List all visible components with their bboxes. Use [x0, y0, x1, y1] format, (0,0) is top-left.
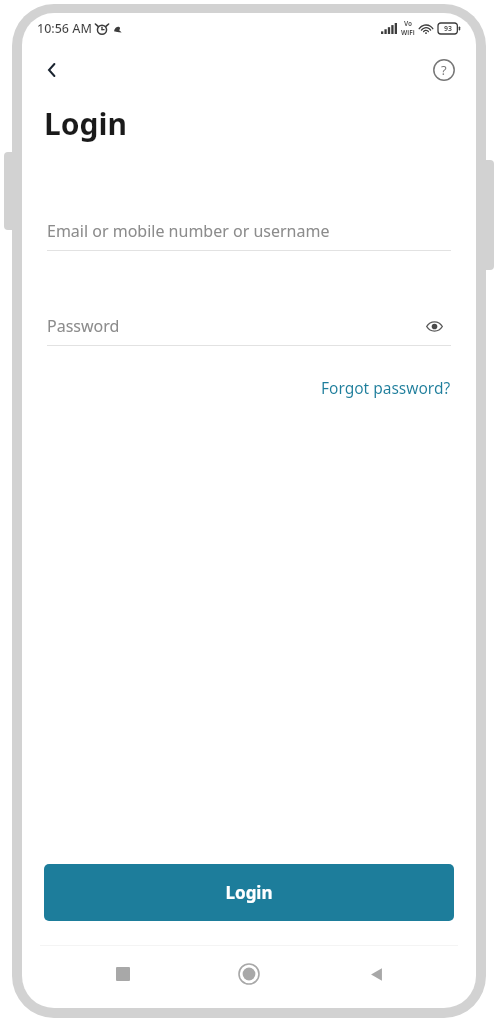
button[interactable]: Help	[422, 48, 466, 92]
staticText: Vo	[404, 19, 413, 28]
staticText: Login	[225, 881, 273, 904]
button[interactable]: Email or mobile number or username	[47, 212, 451, 250]
button[interactable]: Recent apps	[97, 948, 149, 1000]
staticText: 10:56 AM	[37, 20, 92, 37]
staticText: Password	[47, 315, 120, 337]
staticText: Forgot password?	[321, 377, 451, 398]
button[interactable]: Back	[350, 948, 402, 1000]
staticText: Login	[44, 103, 127, 144]
button[interactable]: Login	[44, 864, 454, 921]
staticText: ?	[441, 61, 447, 79]
button[interactable]: Password	[47, 307, 451, 345]
staticText: WiFi	[401, 28, 415, 37]
button[interactable]: Forgot password?	[321, 371, 451, 404]
staticText: Email or mobile number or username	[47, 220, 330, 242]
staticText: 93	[444, 24, 453, 34]
button[interactable]: Home	[223, 948, 275, 1000]
button[interactable]: Back	[30, 48, 74, 92]
button[interactable]: Show password	[417, 309, 451, 343]
